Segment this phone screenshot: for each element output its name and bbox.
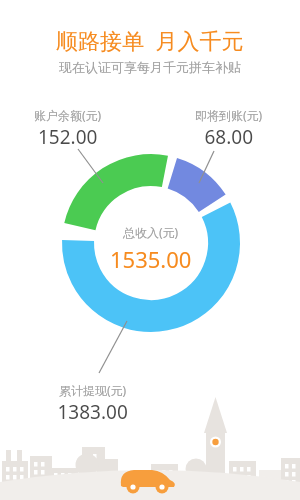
button[interactable]: Ride earnings summary bbox=[0, 0, 300, 500]
